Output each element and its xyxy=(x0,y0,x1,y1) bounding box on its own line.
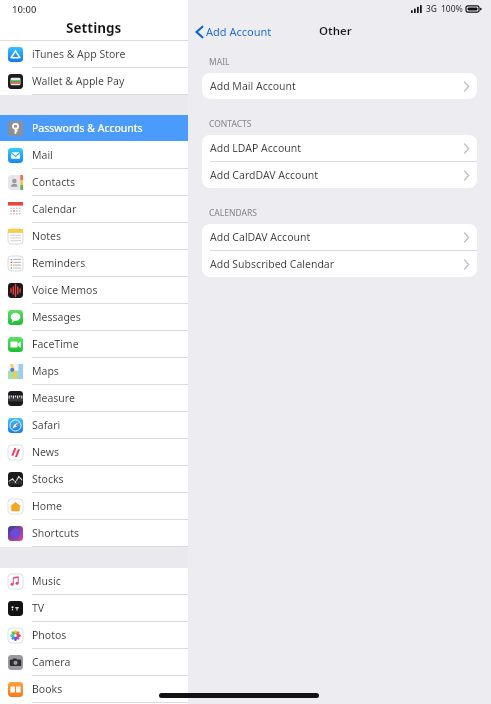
staticText: Camera xyxy=(32,655,71,669)
staticText: FaceTime xyxy=(32,337,79,351)
staticText: Safari xyxy=(32,418,61,432)
button[interactable]: Voice Memos xyxy=(0,277,188,303)
button[interactable]: Add LDAP Account xyxy=(202,135,477,161)
staticText: Photos xyxy=(32,628,67,642)
staticText: Add Account xyxy=(206,24,272,39)
button[interactable]: Books xyxy=(0,676,188,702)
staticText: Add CalDAV Account xyxy=(210,230,464,244)
button[interactable]: Stocks xyxy=(0,466,188,492)
staticText: MAIL xyxy=(209,56,230,68)
staticText: 10:00 xyxy=(12,3,37,16)
staticText: Add Mail Account xyxy=(210,79,464,93)
button[interactable]: Camera xyxy=(0,649,188,675)
button[interactable]: Add CardDAV Account xyxy=(202,162,477,188)
staticText: Messages xyxy=(32,310,81,324)
button[interactable]: Wallet & Apple Pay xyxy=(0,68,188,94)
button[interactable]: Add Mail Account xyxy=(202,73,477,99)
button[interactable]: Passwords & Accounts xyxy=(0,115,188,141)
staticText: Voice Memos xyxy=(32,283,98,297)
button[interactable]: Notes xyxy=(0,223,188,249)
button[interactable]: Shortcuts xyxy=(0,520,188,546)
staticText: Add CardDAV Account xyxy=(210,168,464,182)
button[interactable]: Home xyxy=(0,493,188,519)
staticText: CONTACTS xyxy=(209,118,252,130)
button[interactable]: Calendar xyxy=(0,196,188,222)
button[interactable]: News xyxy=(0,439,188,465)
staticText: Maps xyxy=(32,364,59,378)
staticText: CALENDARS xyxy=(209,207,257,219)
staticText: 100% xyxy=(441,3,463,15)
staticText: Other xyxy=(319,23,352,39)
button[interactable]: Maps xyxy=(0,358,188,384)
button[interactable]: Safari xyxy=(0,412,188,438)
button[interactable]: Add Account xyxy=(196,24,272,39)
button[interactable]: Reminders xyxy=(0,250,188,276)
staticText: Add LDAP Account xyxy=(210,141,464,155)
button[interactable]: Measure xyxy=(0,385,188,411)
button[interactable]: Messages xyxy=(0,304,188,330)
staticText: Calendar xyxy=(32,202,77,216)
staticText: TV xyxy=(32,601,45,615)
staticText: Shortcuts xyxy=(32,526,80,540)
staticText: Music xyxy=(32,574,61,588)
staticText: Add Subscribed Calendar xyxy=(210,257,464,271)
button[interactable]: Add CalDAV Account xyxy=(202,224,477,250)
staticText: News xyxy=(32,445,59,459)
button[interactable]: Contacts xyxy=(0,169,188,195)
button[interactable]: Add Subscribed Calendar xyxy=(202,251,477,277)
staticText: Settings xyxy=(66,19,122,37)
staticText: Home xyxy=(32,499,62,513)
staticText: Contacts xyxy=(32,175,76,189)
staticText: Wallet & Apple Pay xyxy=(32,74,125,88)
staticText: Books xyxy=(32,682,63,696)
button[interactable]: TV xyxy=(0,595,188,621)
button[interactable]: Mail xyxy=(0,142,188,168)
button[interactable]: iTunes & App Store xyxy=(0,41,188,67)
staticText: Measure xyxy=(32,391,75,405)
staticText: Mail xyxy=(32,148,53,162)
staticText: Reminders xyxy=(32,256,86,270)
button[interactable]: Music xyxy=(0,568,188,594)
staticText: iTunes & App Store xyxy=(32,47,126,61)
staticText: Passwords & Accounts xyxy=(32,121,143,135)
staticText: 3G xyxy=(426,3,438,15)
button[interactable]: FaceTime xyxy=(0,331,188,357)
button[interactable]: Photos xyxy=(0,622,188,648)
staticText: Stocks xyxy=(32,472,64,486)
staticText: Notes xyxy=(32,229,62,243)
